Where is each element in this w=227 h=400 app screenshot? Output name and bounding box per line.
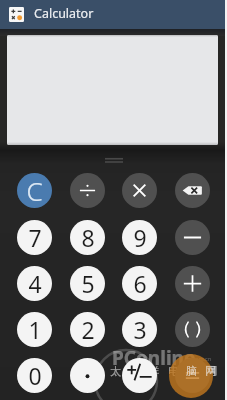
staticText: PConline: [112, 345, 196, 371]
button[interactable]: Parentheses: [175, 312, 210, 347]
button[interactable]: 4: [17, 266, 52, 301]
staticText: 太平洋电脑网: [110, 364, 226, 378]
button[interactable]: Divide: [70, 173, 105, 208]
button[interactable]: Backspace: [175, 173, 210, 208]
button[interactable]: Plus: [175, 266, 210, 301]
button[interactable]: 9: [122, 220, 157, 255]
staticText: 3: [133, 314, 147, 345]
staticText: 8: [81, 222, 95, 253]
button[interactable]: Plus minus: [122, 358, 157, 393]
button[interactable]: Decimal point: [70, 358, 105, 393]
button[interactable]: 7: [17, 220, 52, 255]
button[interactable]: 1: [17, 312, 52, 347]
staticText: 2: [81, 314, 95, 345]
button[interactable]: Equals: [175, 358, 210, 393]
staticText: 5: [81, 268, 95, 299]
staticText: 0: [28, 360, 42, 391]
button[interactable]: C: [17, 173, 52, 208]
button[interactable]: Multiply: [122, 173, 157, 208]
button[interactable]: 8: [70, 220, 105, 255]
staticText: C: [26, 173, 43, 208]
button[interactable]: 2: [70, 312, 105, 347]
staticText: 9: [133, 222, 147, 253]
staticText: 1: [28, 314, 42, 345]
staticText: 4: [28, 268, 42, 299]
button[interactable]: 3: [122, 312, 157, 347]
button[interactable]: 0: [17, 358, 52, 393]
staticText: 7: [28, 222, 42, 253]
button[interactable]: 6: [122, 266, 157, 301]
staticText: 脑网: [186, 364, 225, 378]
staticText: .com.cn: [191, 355, 212, 362]
button[interactable]: Minus: [175, 220, 210, 255]
button[interactable]: 5: [70, 266, 105, 301]
staticText: 6: [133, 268, 147, 299]
staticText: Calculator: [34, 5, 94, 22]
